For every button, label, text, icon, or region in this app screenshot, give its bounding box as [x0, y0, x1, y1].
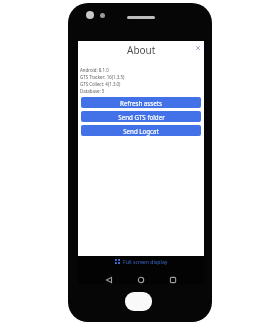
button[interactable]: Send GTS folder — [81, 111, 201, 122]
button[interactable]: Home button — [125, 292, 152, 311]
staticText: GTS Tracker: 16(1.3.5) — [80, 74, 125, 80]
staticText: Refresh assets — [120, 99, 162, 107]
staticText: GTS Collect: 4(1.3.0) — [80, 81, 121, 87]
staticText: Database: 5 — [80, 88, 105, 94]
staticText: Full screen display — [123, 258, 168, 265]
staticText: Send Logcat — [123, 127, 159, 135]
button[interactable]: Refresh assets — [81, 97, 201, 108]
staticText: Send GTS folder — [118, 113, 165, 121]
button[interactable]: Close — [194, 44, 202, 52]
button[interactable]: Send Logcat — [81, 125, 201, 136]
button[interactable]: Recents — [157, 275, 189, 284]
button[interactable]: Full screen display — [115, 258, 168, 265]
staticText: Android: 8.1.0 — [80, 67, 109, 73]
staticText: About — [127, 43, 156, 57]
button[interactable]: Back — [93, 275, 125, 284]
button[interactable]: Home — [125, 275, 157, 284]
